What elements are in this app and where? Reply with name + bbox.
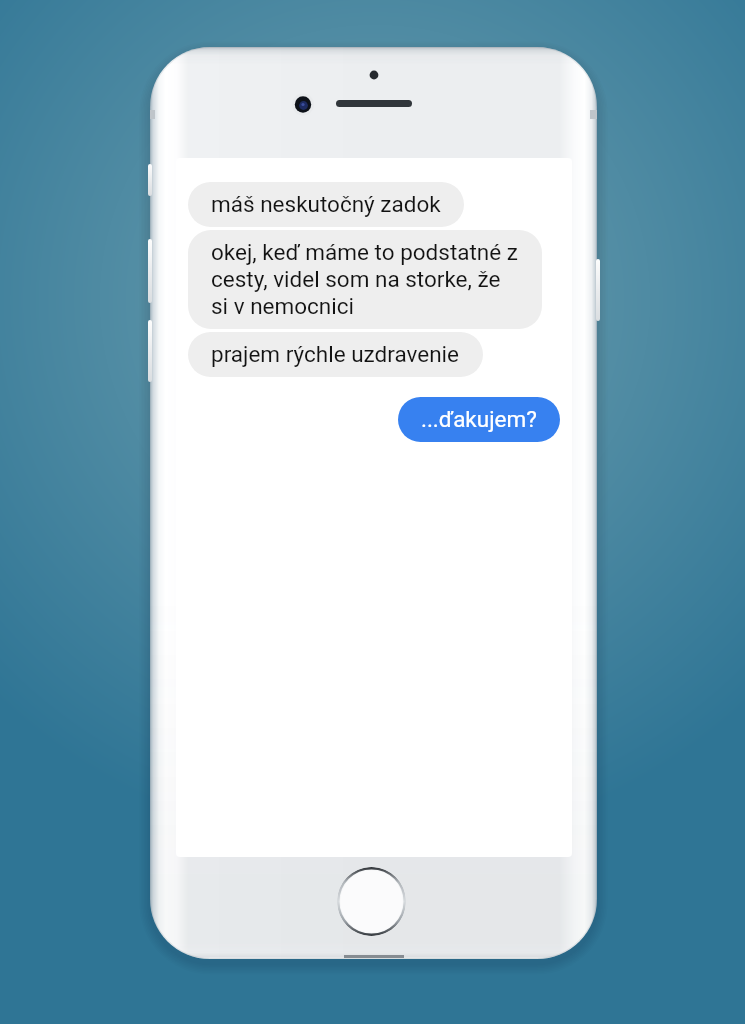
staticText: máš neskutočný zadok — [211, 191, 441, 218]
button[interactable]: Home — [337, 867, 406, 936]
staticText: prajem rýchle uzdravenie — [211, 341, 460, 368]
button[interactable]: prajem rýchle uzdravenie — [188, 332, 483, 377]
button[interactable]: máš neskutočný zadok — [188, 182, 464, 227]
button[interactable]: okej, keď máme to podstatné z cesty, vid… — [188, 230, 542, 329]
staticText: ...ďakujem? — [421, 406, 537, 433]
staticText: okej, keď máme to podstatné z cesty, vid… — [211, 239, 519, 320]
button[interactable]: ...ďakujem? — [398, 397, 560, 442]
